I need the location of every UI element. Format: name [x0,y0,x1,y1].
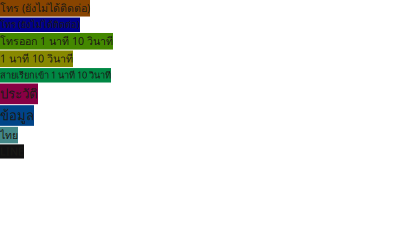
staticText: ประวัติ [0,83,38,104]
staticText: ไทย [0,127,18,143]
staticText: โทร (ยังไม่ได้ติดต่อ) [0,17,80,32]
staticText: 1 นาที 10 วินาที [0,50,73,67]
staticText: สายเรียกเข้า 1 นาที 10 วินาที [0,68,111,83]
staticText: โทรออก 1 นาที 10 วินาที [0,33,113,49]
staticText: ข้อมูล [0,105,34,126]
staticText: โทร (ยังไม่ได้ติดต่อ) [0,0,90,16]
